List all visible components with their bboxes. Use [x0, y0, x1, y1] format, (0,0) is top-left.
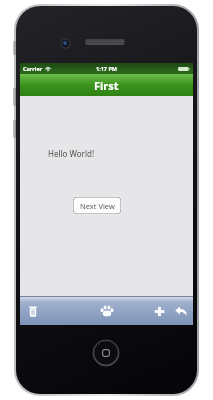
button[interactable]: Back — [171, 301, 191, 321]
button[interactable]: Next View — [73, 197, 121, 214]
staticText: First — [94, 78, 119, 93]
staticText: Next View — [80, 201, 115, 211]
button[interactable]: Delete — [22, 300, 44, 322]
staticText: Carrier — [23, 65, 43, 72]
button[interactable]: Add — [149, 301, 169, 321]
button[interactable]: Paw — [95, 299, 119, 323]
staticText: Hello World! — [48, 148, 95, 159]
staticText: 1:17 PM — [96, 65, 118, 72]
